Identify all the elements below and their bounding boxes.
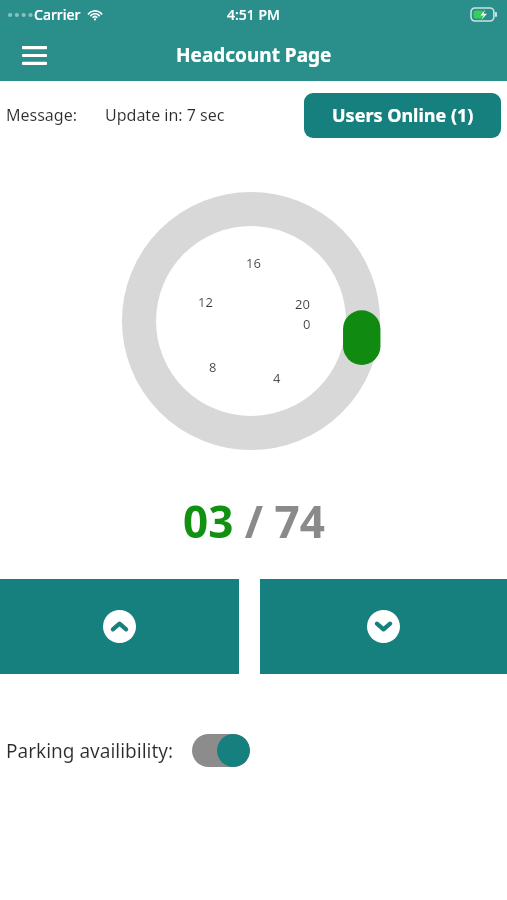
staticText: Carrier <box>34 5 81 24</box>
staticText: Headcount Page <box>176 42 332 68</box>
button[interactable]: Parking availability toggle <box>192 734 250 767</box>
staticText: 20 <box>295 295 310 313</box>
button[interactable]: Users Online (1) <box>304 93 501 138</box>
staticText: 03 / 74 <box>183 491 325 551</box>
staticText: 16 <box>246 254 261 272</box>
staticText: Update in: 7 sec <box>105 104 225 126</box>
staticText: Users Online (1) <box>332 103 474 128</box>
staticText: Message: <box>6 104 77 126</box>
button[interactable]: Increase headcount <box>0 579 239 674</box>
button[interactable]: Decrease headcount <box>260 579 507 674</box>
button[interactable]: Open navigation menu <box>12 33 56 77</box>
staticText: 4:51 PM <box>227 5 280 24</box>
staticText: 8 <box>209 358 217 376</box>
staticText: 4 <box>273 369 281 387</box>
staticText: 0 <box>303 315 311 333</box>
staticText: Parking availibility: <box>6 738 174 764</box>
staticText: 12 <box>198 293 213 311</box>
